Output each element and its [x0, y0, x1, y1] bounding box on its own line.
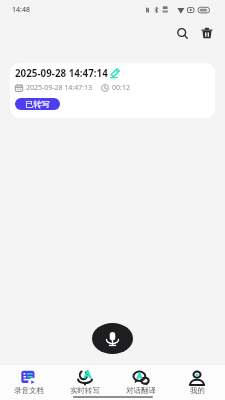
staticText: 14:48	[12, 5, 30, 15]
staticText: 我的	[190, 386, 205, 395]
staticText: 录音文档	[14, 386, 44, 395]
button[interactable]: 对话翻译	[113, 370, 169, 399]
button[interactable]: 录音文档	[0, 370, 57, 399]
staticText: 2025-09-28 14:47:14	[15, 67, 108, 80]
button[interactable]: Search	[172, 23, 192, 43]
button[interactable]: Record	[92, 323, 133, 354]
button[interactable]: 2025-09-28 14:47:14	[10, 63, 215, 118]
button[interactable]: 已转写	[15, 98, 60, 110]
button[interactable]: Edit	[110, 68, 120, 78]
staticText: 实时转写	[70, 386, 100, 395]
button[interactable]: 实时转写	[57, 370, 113, 399]
staticText: 2025-09-28 14:47:13	[26, 83, 93, 93]
button[interactable]: Delete	[197, 23, 217, 43]
staticText: 00:12	[112, 83, 130, 93]
button[interactable]: 我的	[169, 370, 225, 399]
staticText: 对话翻译	[126, 386, 156, 395]
staticText: 已转写	[25, 99, 50, 109]
